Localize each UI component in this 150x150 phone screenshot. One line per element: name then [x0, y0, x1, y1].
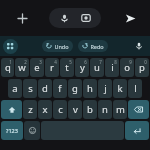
- staticText: Undo: [54, 43, 69, 50]
- button[interactable]: r: [45, 58, 59, 77]
- button[interactable]: i: [105, 58, 119, 77]
- button[interactable]: Enter: [125, 121, 149, 140]
- staticText: k: [117, 82, 123, 95]
- button[interactable]: t: [60, 58, 74, 77]
- button[interactable]: Backspace: [128, 100, 149, 119]
- staticText: l: [134, 82, 137, 95]
- staticText: x: [42, 103, 48, 116]
- staticText: w: [18, 61, 26, 74]
- staticText: 6: [84, 59, 87, 65]
- staticText: ?123: [6, 127, 18, 134]
- staticText: 9: [129, 59, 132, 65]
- staticText: p: [139, 61, 145, 74]
- staticText: 5: [69, 59, 72, 65]
- button[interactable]: b: [83, 100, 97, 119]
- staticText: b: [87, 103, 93, 116]
- staticText: Redo: [90, 43, 104, 50]
- staticText: j: [104, 82, 107, 95]
- button[interactable]: Voice input: [56, 10, 72, 26]
- staticText: 3: [39, 59, 42, 65]
- staticText: f: [58, 82, 62, 95]
- button[interactable]: ?123: [1, 121, 23, 140]
- staticText: r: [50, 61, 54, 74]
- staticText: c: [58, 103, 63, 116]
- staticText: o: [124, 61, 130, 74]
- button[interactable]: y: [75, 58, 89, 77]
- staticText: 1: [9, 59, 12, 65]
- button[interactable]: j: [98, 79, 112, 98]
- button[interactable]: k: [113, 79, 127, 98]
- button[interactable]: d: [38, 79, 52, 98]
- staticText: u: [94, 61, 100, 74]
- staticText: d: [42, 82, 48, 95]
- button[interactable]: Send: [120, 8, 140, 28]
- button[interactable]: p: [135, 58, 149, 77]
- button[interactable]: Camera: [78, 10, 94, 26]
- staticText: a: [12, 82, 18, 95]
- button[interactable]: n: [98, 100, 112, 119]
- button[interactable]: Undo: [42, 40, 73, 52]
- button[interactable]: Keyboard options: [3, 39, 18, 54]
- staticText: 8: [114, 59, 117, 65]
- staticText: i: [111, 61, 114, 74]
- button[interactable]: z: [23, 100, 37, 119]
- staticText: v: [73, 103, 78, 116]
- staticText: q: [5, 61, 11, 74]
- button[interactable]: w: [15, 58, 29, 77]
- staticText: m: [116, 103, 125, 116]
- staticText: z: [28, 103, 33, 116]
- button[interactable]: Shift: [1, 100, 22, 119]
- button[interactable]: m: [113, 100, 127, 119]
- staticText: 2: [24, 59, 27, 65]
- staticText: h: [87, 82, 93, 95]
- staticText: e: [34, 61, 40, 74]
- button[interactable]: q: [1, 58, 14, 77]
- button[interactable]: e: [30, 58, 44, 77]
- staticText: t: [65, 61, 69, 74]
- button[interactable]: Voice typing: [132, 39, 146, 53]
- button[interactable]: g: [68, 79, 82, 98]
- staticText: y: [80, 61, 85, 74]
- button[interactable]: h: [83, 79, 97, 98]
- staticText: 0: [144, 59, 147, 65]
- button[interactable]: x: [38, 100, 52, 119]
- staticText: 7: [99, 59, 102, 65]
- staticText: n: [102, 103, 108, 116]
- button[interactable]: s: [23, 79, 37, 98]
- staticText: 4: [54, 59, 57, 65]
- button[interactable]: l: [128, 79, 142, 98]
- button[interactable]: Add attachment: [12, 8, 32, 28]
- staticText: s: [28, 82, 33, 95]
- button[interactable]: v: [68, 100, 82, 119]
- button[interactable]: o: [120, 58, 134, 77]
- button[interactable]: u: [90, 58, 104, 77]
- staticText: g: [72, 82, 78, 95]
- button[interactable]: a: [8, 79, 22, 98]
- button[interactable]: Emoji: [24, 121, 40, 140]
- button[interactable]: Redo: [78, 40, 108, 52]
- button[interactable]: c: [53, 100, 67, 119]
- button[interactable]: f: [53, 79, 67, 98]
